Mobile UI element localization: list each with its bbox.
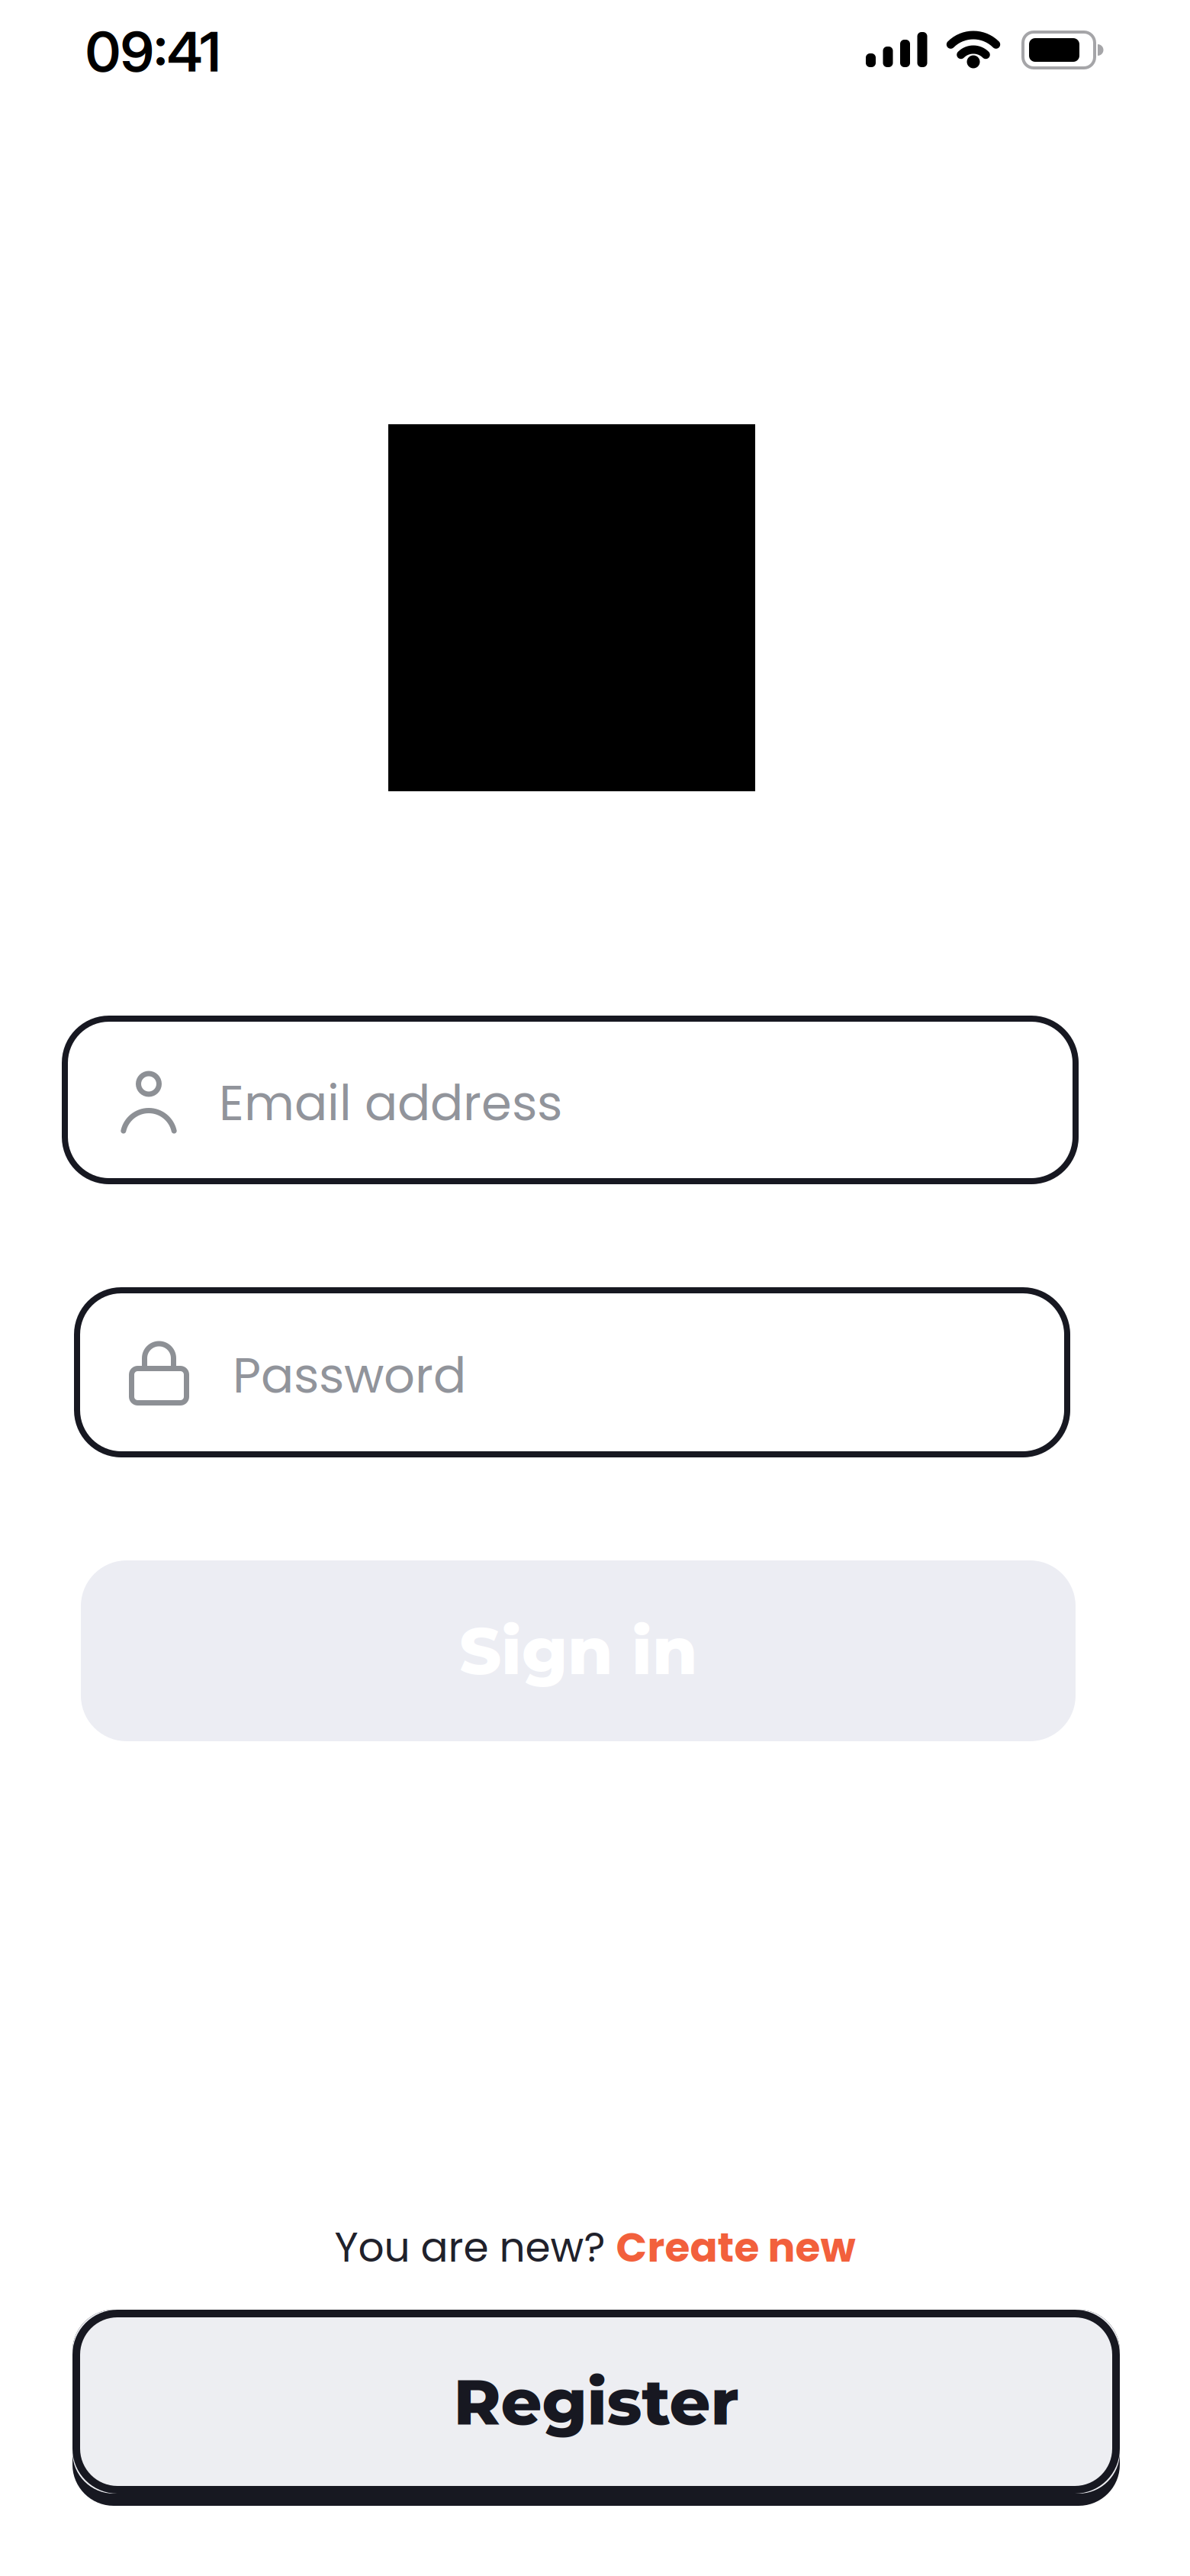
staticText: Email address xyxy=(219,1069,562,1137)
button[interactable]: Email address xyxy=(62,1016,1079,1184)
button[interactable]: Sign in xyxy=(81,1560,1076,1741)
button[interactable]: Password xyxy=(74,1287,1070,1457)
staticText: Create new xyxy=(616,2219,856,2276)
staticText: Sign in xyxy=(459,1611,697,1690)
staticText: Password xyxy=(233,1341,466,1410)
button[interactable]: Register xyxy=(72,2310,1120,2506)
staticText: You are new? xyxy=(334,2219,616,2276)
staticText: Register xyxy=(453,2363,739,2441)
staticText: 09:41 xyxy=(85,18,220,85)
button[interactable]: You are new? xyxy=(334,2219,856,2276)
